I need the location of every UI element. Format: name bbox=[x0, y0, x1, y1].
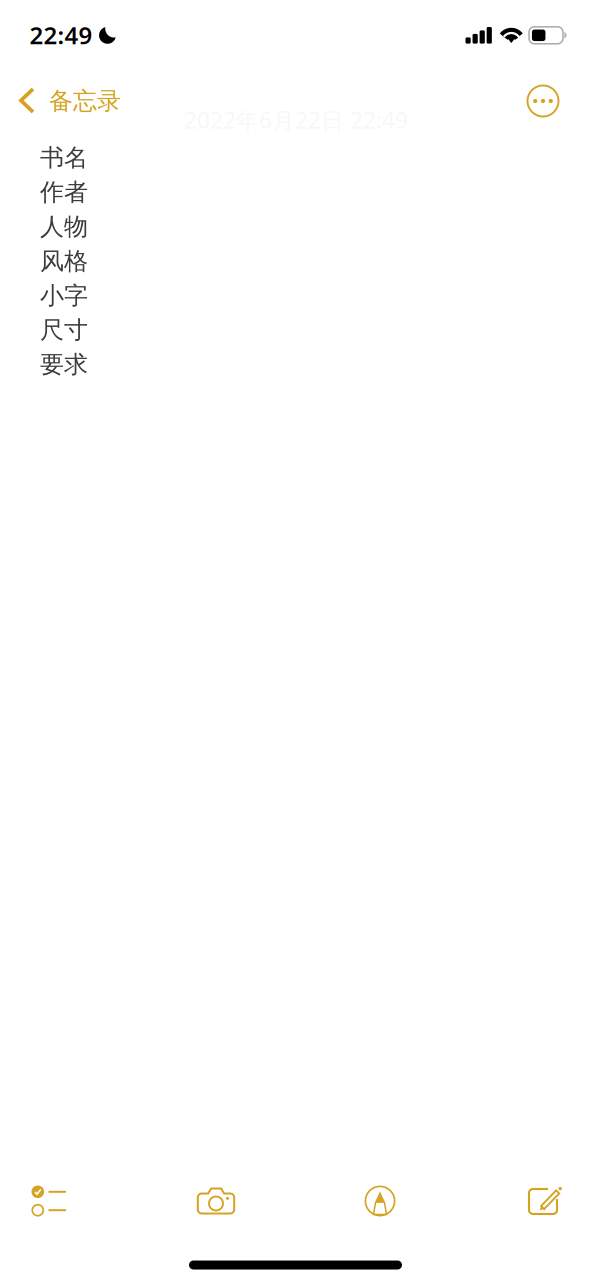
button[interactable]: 备忘录 bbox=[13, 80, 127, 122]
staticText: 小字 bbox=[40, 281, 88, 310]
staticText: 作者 bbox=[40, 177, 88, 207]
button[interactable]: More bbox=[518, 76, 567, 125]
staticText: 要求 bbox=[40, 350, 88, 379]
staticText: 书名 bbox=[40, 143, 88, 172]
staticText: 尺寸 bbox=[40, 315, 88, 345]
staticText: 风格 bbox=[40, 246, 88, 276]
staticText: 人物 bbox=[40, 212, 88, 241]
button[interactable]: Markup bbox=[350, 1173, 409, 1228]
staticText: 22:49 bbox=[29, 19, 92, 51]
staticText: 备忘录 bbox=[49, 86, 121, 116]
button[interactable]: Checklist bbox=[17, 1173, 80, 1228]
button[interactable]: Camera bbox=[182, 1175, 249, 1227]
button[interactable]: New Note bbox=[513, 1169, 575, 1230]
